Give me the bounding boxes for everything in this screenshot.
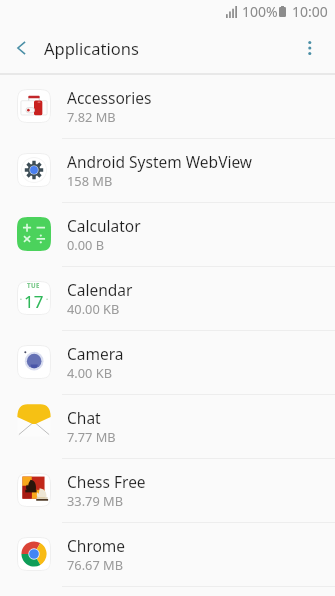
staticText: 158 MB <box>67 172 113 189</box>
staticText: TUE <box>27 281 41 289</box>
staticText: 17 <box>24 290 44 313</box>
staticText: 4.00 KB <box>67 364 112 381</box>
staticText: 33.79 MB <box>67 492 123 509</box>
staticText: Calendar <box>67 279 133 300</box>
staticText: Chess Free <box>67 471 146 492</box>
staticText: 40.00 KB <box>67 300 120 317</box>
staticText: Chrome <box>67 535 126 556</box>
button[interactable]: Camera <box>0 331 335 395</box>
button[interactable]: Android System WebView <box>0 139 335 203</box>
button[interactable]: TUE <box>0 267 335 331</box>
staticText: 10:00 <box>292 2 328 21</box>
staticText: 100% <box>242 2 278 21</box>
button[interactable]: More options <box>291 22 335 73</box>
staticText: 76.67 MB <box>67 556 123 573</box>
staticText: Chat <box>67 407 101 428</box>
staticText: 7.77 MB <box>67 428 116 445</box>
button[interactable]: Calculator <box>0 203 335 267</box>
staticText: Camera <box>67 343 124 364</box>
staticText: Android System WebView <box>67 151 253 172</box>
button[interactable]: Navigate up <box>0 22 44 73</box>
staticText: 7.82 MB <box>67 108 116 125</box>
button[interactable]: Accessories <box>0 75 335 139</box>
staticText: Calculator <box>67 215 141 236</box>
staticText: Applications <box>44 37 139 59</box>
button[interactable]: Chrome <box>0 523 335 587</box>
button[interactable]: Chat <box>0 395 335 459</box>
staticText: 0.00 B <box>67 236 105 253</box>
staticText: Accessories <box>67 87 152 108</box>
button[interactable]: Chess Free <box>0 459 335 523</box>
